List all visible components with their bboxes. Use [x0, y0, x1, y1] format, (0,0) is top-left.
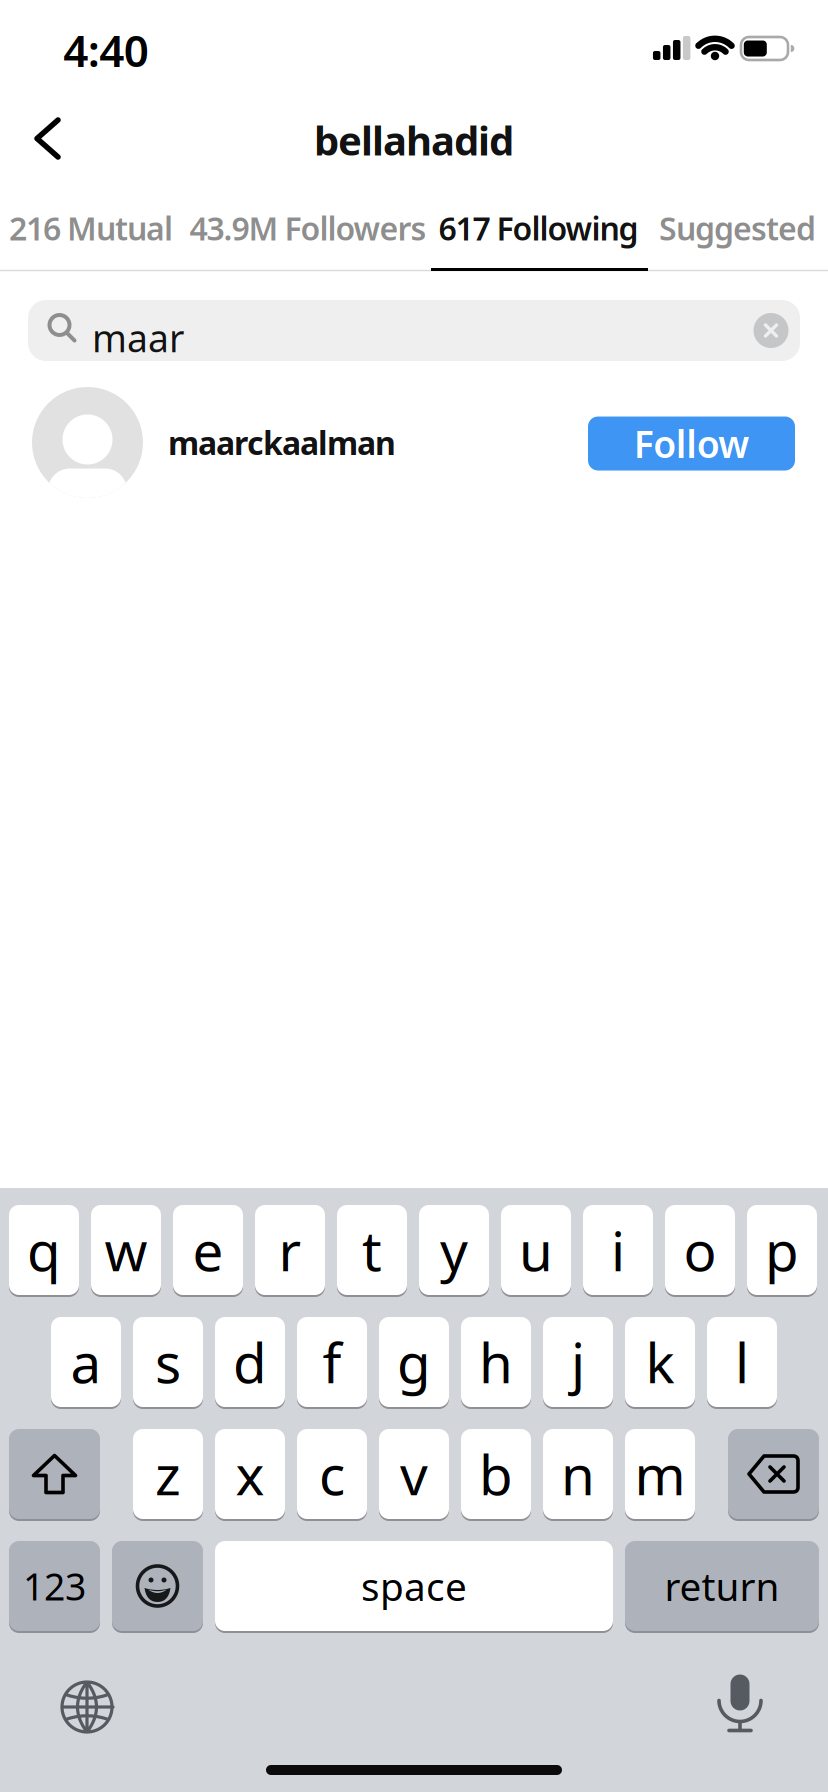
button[interactable]: Delete: [728, 1429, 819, 1519]
button[interactable]: i: [583, 1205, 653, 1295]
staticText: v: [400, 1438, 428, 1510]
staticText: g: [397, 1326, 431, 1398]
button[interactable]: 216 Mutual: [9, 207, 173, 249]
button[interactable]: c: [297, 1429, 367, 1519]
button[interactable]: Clear search: [753, 313, 788, 348]
staticText: b: [479, 1438, 513, 1510]
button[interactable]: 617 Following: [438, 207, 638, 249]
staticText: p: [765, 1214, 799, 1286]
button[interactable]: z: [133, 1429, 203, 1519]
staticText: k: [645, 1326, 674, 1398]
staticText: r: [278, 1214, 301, 1286]
staticText: u: [519, 1214, 553, 1286]
button[interactable]: Follow: [588, 416, 795, 470]
staticText: space: [361, 1560, 467, 1612]
staticText: z: [155, 1438, 181, 1510]
staticText: e: [192, 1214, 223, 1286]
button[interactable]: j: [543, 1317, 613, 1407]
staticText: c: [319, 1438, 345, 1510]
button[interactable]: Suggested: [659, 207, 816, 249]
button[interactable]: f: [297, 1317, 367, 1407]
button[interactable]: d: [215, 1317, 285, 1407]
staticText: j: [571, 1326, 585, 1398]
button[interactable]: h: [461, 1317, 531, 1407]
staticText: n: [561, 1438, 595, 1510]
staticText: 216 Mutual: [9, 207, 173, 249]
button[interactable]: w: [91, 1205, 161, 1295]
button[interactable]: n: [543, 1429, 613, 1519]
staticText: h: [479, 1326, 513, 1398]
button[interactable]: Emoji: [112, 1541, 203, 1631]
button[interactable]: space: [215, 1541, 613, 1631]
staticText: Follow: [634, 419, 749, 468]
staticText: d: [233, 1326, 267, 1398]
button[interactable]: 123: [9, 1541, 100, 1631]
staticText: o: [683, 1214, 716, 1286]
button[interactable]: y: [419, 1205, 489, 1295]
staticText: 4:40: [63, 21, 149, 79]
button[interactable]: v: [379, 1429, 449, 1519]
button[interactable]: g: [379, 1317, 449, 1407]
button[interactable]: k: [625, 1317, 695, 1407]
staticText: t: [362, 1214, 382, 1286]
button[interactable]: return: [625, 1541, 819, 1631]
button[interactable]: Shift: [9, 1429, 100, 1519]
button[interactable]: Next keyboard: [61, 1681, 113, 1733]
staticText: y: [440, 1214, 468, 1286]
button[interactable]: b: [461, 1429, 531, 1519]
staticText: w: [104, 1214, 147, 1286]
staticText: maar: [92, 313, 184, 363]
button[interactable]: maarckaalman: [32, 387, 396, 498]
staticText: i: [611, 1214, 625, 1286]
staticText: 123: [23, 1561, 86, 1611]
button[interactable]: a: [51, 1317, 121, 1407]
button[interactable]: Dictate: [717, 1674, 763, 1731]
button[interactable]: e: [173, 1205, 243, 1295]
staticText: return: [664, 1560, 779, 1612]
button[interactable]: o: [665, 1205, 735, 1295]
staticText: q: [27, 1214, 61, 1286]
button[interactable]: s: [133, 1317, 203, 1407]
staticText: s: [155, 1326, 181, 1398]
staticText: bellahadid: [314, 113, 514, 166]
staticText: x: [235, 1438, 264, 1510]
button[interactable]: x: [215, 1429, 285, 1519]
button[interactable]: r: [255, 1205, 325, 1295]
button[interactable]: q: [9, 1205, 79, 1295]
staticText: a: [70, 1326, 101, 1398]
staticText: Suggested: [659, 207, 816, 249]
button[interactable]: t: [337, 1205, 407, 1295]
button[interactable]: 43.9M Followers: [189, 207, 426, 249]
button[interactable]: m: [625, 1429, 695, 1519]
button[interactable]: l: [707, 1317, 777, 1407]
staticText: 43.9M Followers: [189, 207, 426, 249]
button[interactable]: Back: [34, 117, 61, 160]
staticText: 617 Following: [438, 207, 638, 249]
button[interactable]: p: [747, 1205, 817, 1295]
button[interactable]: u: [501, 1205, 571, 1295]
staticText: maarckaalman: [168, 421, 396, 464]
staticText: m: [634, 1438, 685, 1510]
staticText: f: [322, 1326, 341, 1398]
staticText: l: [735, 1326, 749, 1398]
